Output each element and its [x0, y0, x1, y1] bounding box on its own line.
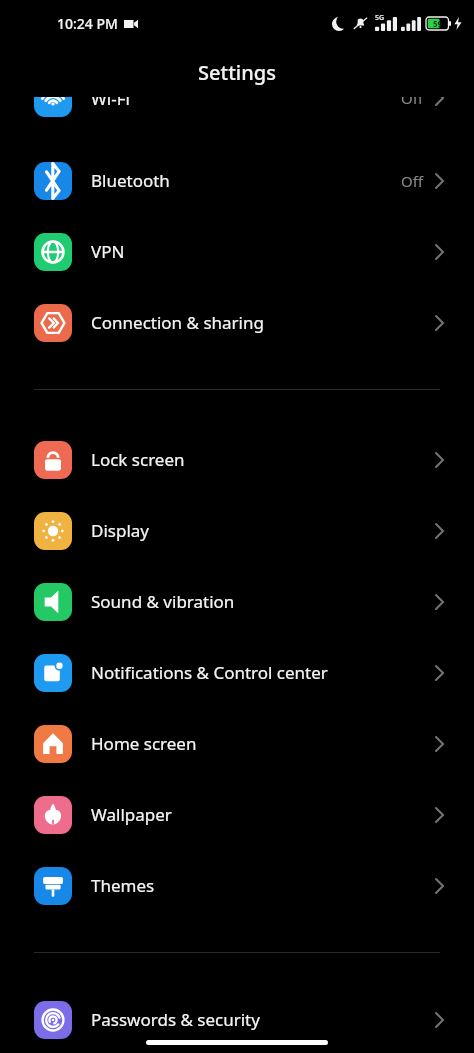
staticText: 5G — [375, 13, 385, 23]
staticText: 10:24 PM — [57, 14, 118, 33]
staticText: Bluetooth — [91, 169, 170, 192]
button[interactable]: Wallpaper — [0, 779, 474, 850]
staticText: Home screen — [91, 732, 197, 755]
button[interactable]: Lock screen — [0, 424, 474, 495]
staticText: 59 — [433, 18, 443, 29]
button[interactable]: Notifications & Control center — [0, 637, 474, 708]
staticText: Off — [401, 171, 424, 191]
staticText: Display — [91, 519, 149, 542]
button[interactable]: Sound & vibration — [0, 566, 474, 637]
staticText: VPN — [91, 240, 125, 263]
button[interactable]: Connection & sharing — [0, 287, 474, 358]
button[interactable]: Display — [0, 495, 474, 566]
button[interactable]: Wi-Fi — [0, 97, 474, 122]
staticText: Off — [401, 97, 424, 108]
staticText: Passwords & security — [91, 1008, 260, 1031]
button[interactable]: Bluetooth — [0, 145, 474, 216]
staticText: Connection & sharing — [91, 311, 264, 334]
staticText: Notifications & Control center — [91, 661, 328, 684]
button[interactable]: VPN — [0, 216, 474, 287]
staticText: Wi-Fi — [91, 97, 130, 110]
staticText: Themes — [91, 874, 155, 897]
staticText: Settings — [198, 59, 276, 86]
staticText: Lock screen — [91, 448, 185, 471]
button[interactable]: Passwords & security — [0, 986, 474, 1053]
button[interactable]: Themes — [0, 850, 474, 921]
staticText: Wallpaper — [91, 803, 172, 826]
staticText: Sound & vibration — [91, 590, 235, 613]
button[interactable]: Home screen — [0, 708, 474, 779]
